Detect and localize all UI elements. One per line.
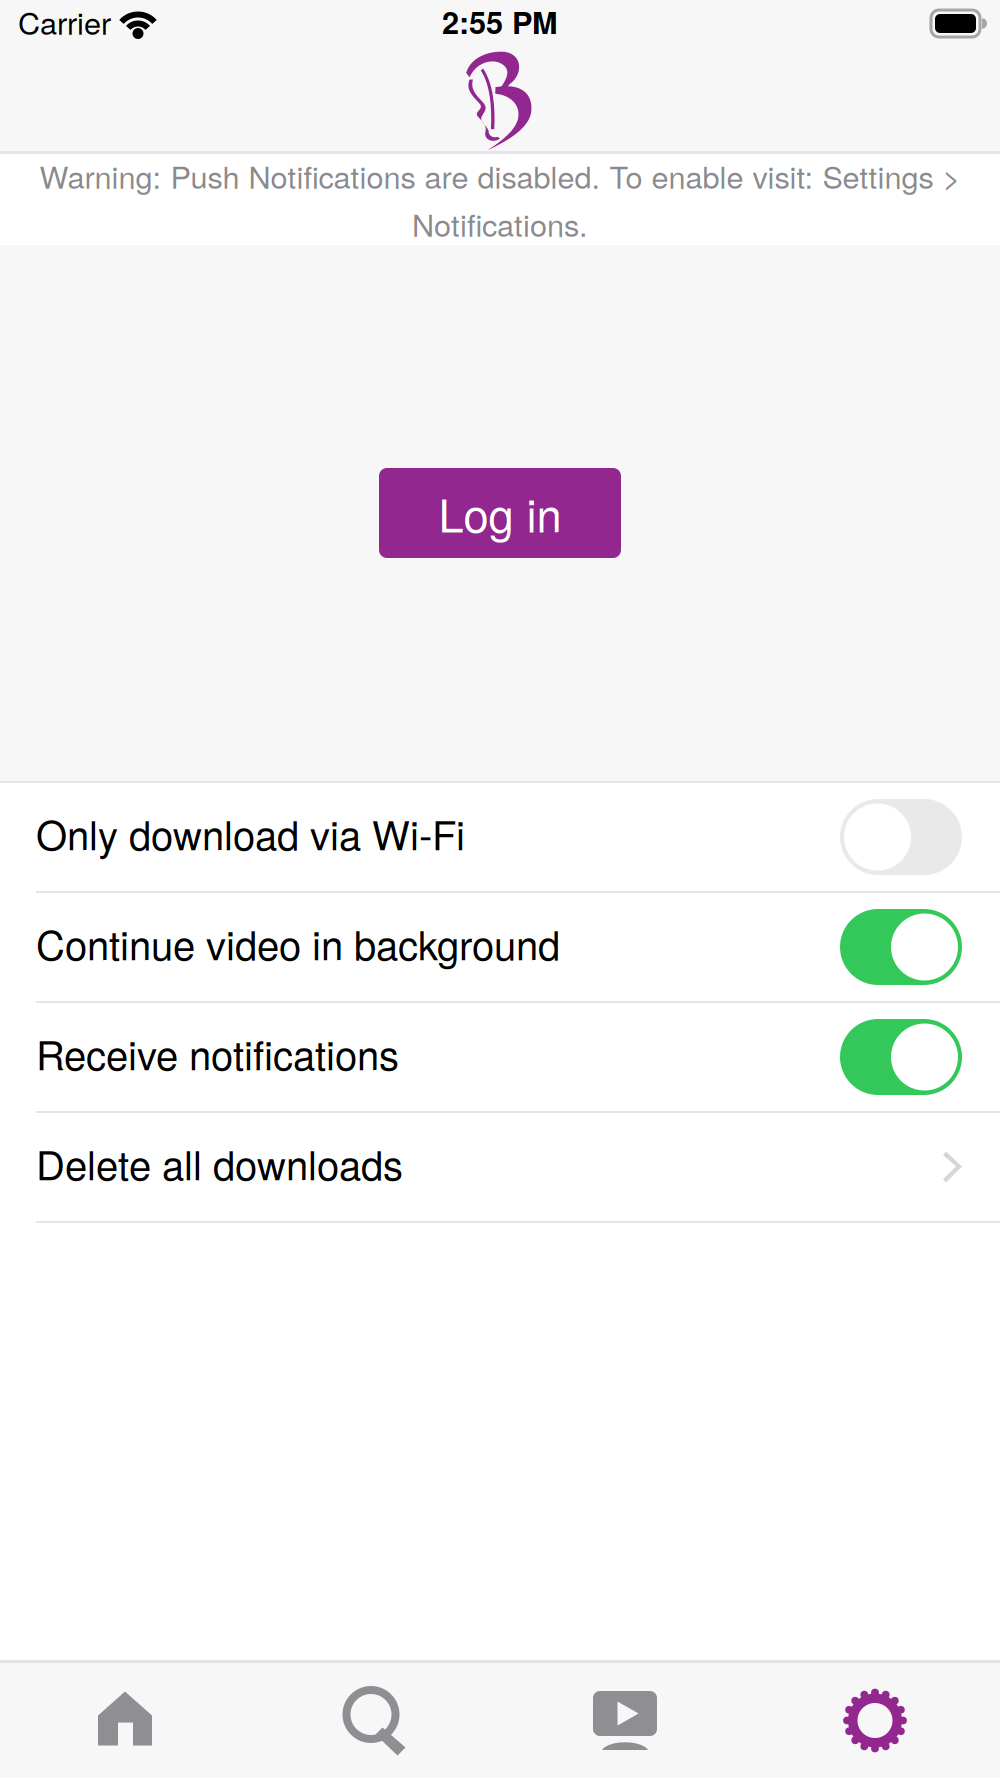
staticText: Carrier (18, 0, 111, 43)
button[interactable]: Settings (750, 1663, 1000, 1778)
staticText: Receive notifications (36, 1024, 399, 1082)
button[interactable]: Log in (379, 468, 621, 558)
staticText: Log in (438, 480, 561, 545)
staticText: Continue video in background (36, 914, 560, 972)
staticText: Notifications. (412, 201, 588, 245)
button[interactable]: Only download via Wi-Fi (0, 783, 1000, 893)
button[interactable]: Videos (500, 1663, 750, 1778)
staticText: Delete all downloads (36, 1134, 403, 1192)
staticText: Only download via Wi-Fi (36, 804, 465, 862)
staticText: 2:55 PM (442, 0, 558, 43)
button[interactable]: Home (0, 1663, 250, 1778)
button[interactable]: Continue video in background (0, 893, 1000, 1003)
button[interactable]: Search (250, 1663, 500, 1778)
button[interactable]: Receive notifications (0, 1003, 1000, 1113)
staticText: Warning: Push Notifications are disabled… (39, 154, 960, 197)
button[interactable]: Delete all downloads (0, 1113, 1000, 1223)
